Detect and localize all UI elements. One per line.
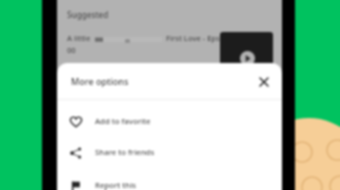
staticText: Share to friends [95, 147, 155, 158]
button[interactable]: Add to favorite [57, 106, 282, 137]
button[interactable]: Close [255, 73, 273, 91]
staticText: A little [67, 33, 91, 43]
staticText: First Love - Eps [166, 33, 220, 43]
button[interactable]: Play video [220, 32, 273, 66]
staticText: Report this [95, 180, 137, 190]
staticText: 00 [67, 45, 76, 55]
button[interactable]: Report this [57, 170, 282, 190]
staticText: Add to favorite [95, 116, 151, 127]
staticText: Suggested [67, 9, 109, 20]
button[interactable]: Share to friends [57, 137, 282, 168]
staticText: More options [71, 75, 129, 87]
